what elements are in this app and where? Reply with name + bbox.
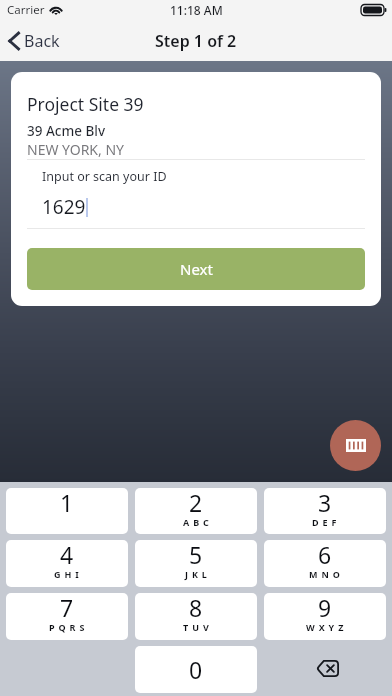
button[interactable]: 8	[135, 593, 257, 640]
button[interactable]: 5	[135, 540, 257, 587]
staticText: Input or scan your ID	[42, 168, 167, 185]
staticText: 9	[318, 593, 332, 623]
staticText: NEW YORK, NY	[27, 140, 124, 159]
button[interactable]: 1	[6, 488, 128, 534]
staticText: J K L	[185, 568, 208, 580]
staticText: Back	[24, 30, 60, 52]
button[interactable]: Backspace	[264, 646, 386, 693]
button[interactable]: 9	[264, 593, 386, 640]
staticText: 1629	[42, 194, 86, 220]
staticText: 1	[60, 488, 74, 518]
button[interactable]: 7	[6, 593, 128, 640]
button[interactable]: 2	[135, 488, 257, 534]
staticText: M N O	[309, 568, 341, 580]
staticText: 11:18 AM	[170, 2, 223, 18]
button[interactable]: 4	[6, 540, 128, 587]
staticText: 0	[189, 654, 203, 685]
staticText: 6	[318, 540, 332, 570]
staticText: 8	[189, 593, 203, 623]
staticText: Step 1 of 2	[155, 30, 237, 52]
staticText: 5	[189, 540, 203, 570]
staticText: 3	[318, 488, 332, 518]
staticText: 7	[60, 593, 74, 623]
button[interactable]: Scan barcode	[330, 420, 381, 471]
staticText: G H I	[54, 568, 80, 580]
button[interactable]: 6	[264, 540, 386, 587]
staticText: Next	[180, 259, 213, 279]
staticText: 2	[189, 488, 203, 518]
button[interactable]: 3	[264, 488, 386, 534]
staticText: A B C	[183, 516, 210, 528]
staticText: 39 Acme Blv	[27, 122, 106, 140]
staticText: T U V	[183, 621, 210, 633]
button[interactable]: 0	[135, 646, 257, 693]
staticText: Project Site 39	[27, 92, 144, 116]
staticText: W X Y Z	[306, 621, 345, 633]
staticText: P Q R S	[49, 621, 86, 633]
button[interactable]: Back	[0, 26, 70, 56]
button[interactable]: Next	[27, 248, 365, 290]
staticText: D E F	[312, 516, 338, 528]
staticText: Carrier	[7, 2, 45, 18]
staticText: 4	[60, 540, 74, 570]
